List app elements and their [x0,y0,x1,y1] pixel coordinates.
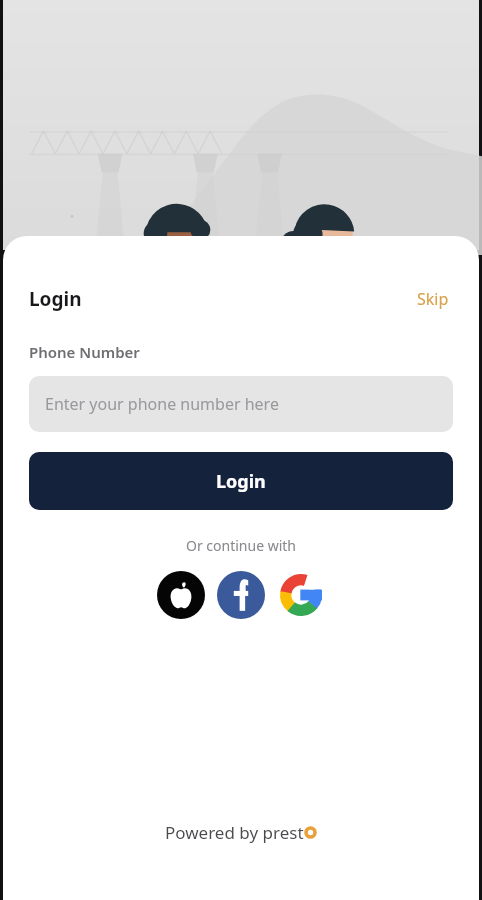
staticText: Login [216,469,266,494]
button[interactable]: Powered by prest [29,821,453,844]
button[interactable]: Skip [413,284,453,314]
button[interactable]: Login [29,452,453,510]
staticText: Skip [417,288,449,310]
staticText: Login [29,286,82,312]
button[interactable]: Continue with Google [275,569,327,621]
staticText: Powered by prest [165,821,304,844]
button[interactable]: Enter your phone number here [29,376,453,432]
button[interactable]: Continue with Facebook [215,569,267,621]
staticText: Phone Number [29,342,140,362]
staticText: Or continue with [29,536,453,555]
staticText: Enter your phone number here [45,393,279,415]
button[interactable]: Continue with Apple [155,569,207,621]
